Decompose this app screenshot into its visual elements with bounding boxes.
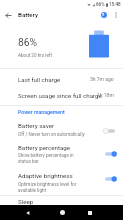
staticText: Battery percentage — [18, 144, 71, 151]
button[interactable]: Back — [20, 205, 36, 220]
button[interactable]: Off — [103, 126, 119, 136]
button[interactable]: Last full charge — [0, 71, 123, 87]
staticText: Show battery percentage in — [18, 153, 74, 158]
staticText: Battery — [18, 11, 38, 18]
button[interactable]: Help — [98, 9, 109, 20]
staticText: 86% — [18, 36, 38, 48]
staticText: status bar — [18, 159, 39, 164]
staticText: Screen usage since full charge — [18, 92, 102, 99]
staticText: Power management — [18, 109, 65, 115]
staticText: available light — [18, 188, 47, 193]
button[interactable]: Screen usage since full charge — [0, 87, 123, 103]
button[interactable]: Home — [54, 205, 70, 220]
button[interactable]: Navigate up — [2, 9, 14, 21]
staticText: Optimize brightness level for — [18, 182, 77, 187]
button[interactable]: On — [103, 149, 119, 159]
button[interactable]: Battery saver — [0, 118, 123, 137]
button[interactable]: On — [103, 174, 119, 184]
button[interactable]: Battery percentage — [0, 140, 123, 165]
staticText: ? — [102, 12, 105, 17]
staticText: 3h 7m ago — [90, 76, 114, 82]
staticText: 1h 18m — [97, 92, 114, 98]
staticText: About 20 hrs left — [18, 53, 52, 58]
button[interactable]: Adaptive brightness — [0, 168, 123, 193]
staticText: Adaptive brightness — [18, 172, 73, 179]
button[interactable]: Recent apps — [82, 205, 98, 220]
staticText: 15:48 — [109, 2, 121, 7]
staticText: Last full charge — [18, 76, 61, 83]
button[interactable]: More options — [110, 9, 121, 20]
staticText: 66% — [96, 2, 105, 7]
staticText: Battery saver — [18, 122, 55, 129]
staticText: Off / Never turn on automatically — [18, 132, 85, 137]
staticText: Sleep — [18, 198, 34, 205]
